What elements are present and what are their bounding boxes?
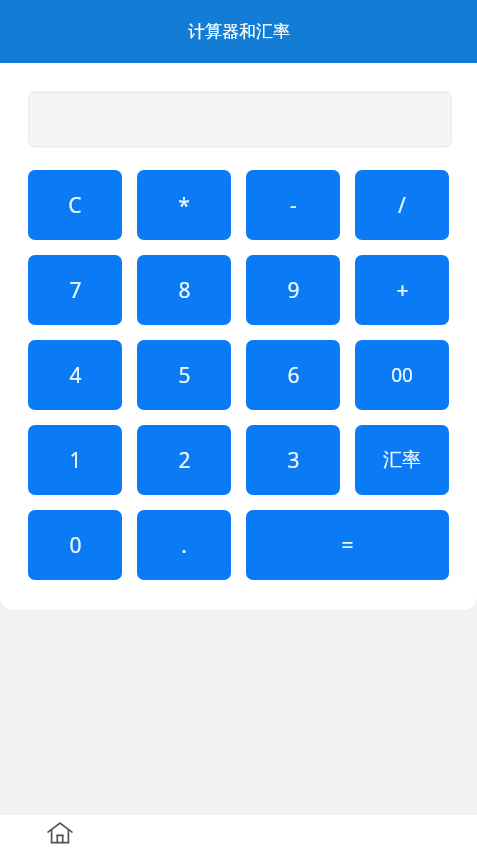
staticText: / [398,191,406,220]
button[interactable]: 9 [246,255,340,325]
button[interactable]: / [355,170,449,240]
button[interactable]: * [137,170,231,240]
button[interactable]: . [137,510,231,580]
staticText: 8 [178,276,191,305]
staticText: 4 [69,361,82,390]
staticText: 00 [391,362,413,388]
button[interactable]: = [246,510,449,580]
button[interactable]: 汇率 [355,425,449,495]
staticText: . [181,531,187,560]
staticText: 7 [69,276,82,305]
staticText: 计算器和汇率 [188,21,290,42]
button[interactable]: 5 [137,340,231,410]
staticText: 2 [178,446,191,475]
staticText: C [68,191,82,220]
staticText: + [396,276,409,305]
staticText: 9 [287,276,300,305]
button[interactable]: 6 [246,340,340,410]
button[interactable]: 2 [137,425,231,495]
button[interactable]: 4 [28,340,122,410]
staticText: 1 [69,446,82,475]
button[interactable]: 8 [137,255,231,325]
staticText: 3 [287,446,300,475]
button[interactable]: 1 [28,425,122,495]
staticText: 0 [69,531,82,560]
button[interactable]: C [28,170,122,240]
button[interactable]: 3 [246,425,340,495]
staticText: 6 [287,361,300,390]
button[interactable]: 0 [28,510,122,580]
staticText: 汇率 [383,448,421,472]
button[interactable]: 00 [355,340,449,410]
button[interactable]: Home [0,815,119,850]
staticText: * [178,191,190,220]
staticText: 5 [178,361,191,390]
staticText: - [290,191,297,220]
button[interactable]: - [246,170,340,240]
button[interactable]: 7 [28,255,122,325]
button[interactable]: + [355,255,449,325]
staticText: = [341,531,354,560]
